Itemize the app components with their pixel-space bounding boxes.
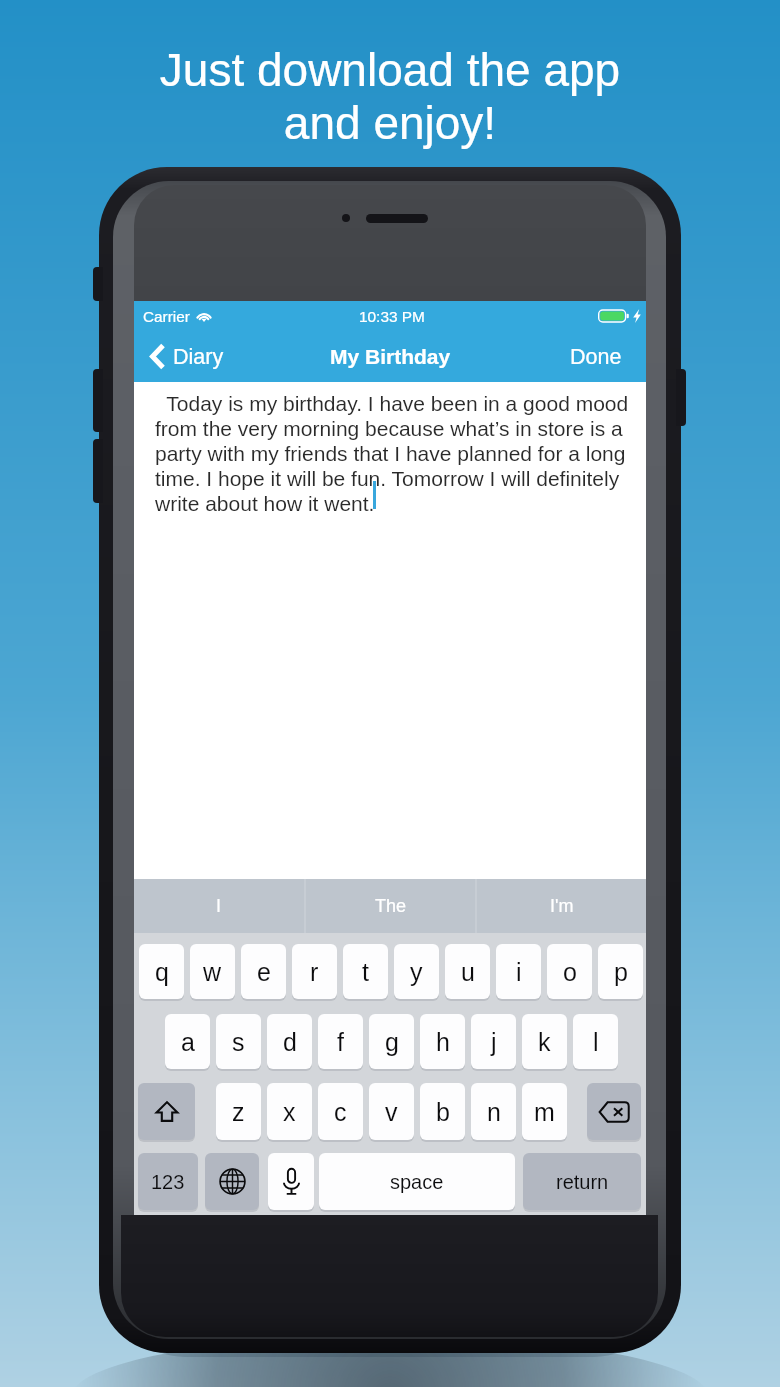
button[interactable]: f <box>318 1014 363 1069</box>
button[interactable]: u <box>445 944 490 999</box>
staticText: q <box>155 958 169 986</box>
staticText: I <box>216 896 222 916</box>
staticText: Carrier <box>143 308 190 325</box>
button[interactable]: Switch keyboard <box>205 1153 259 1210</box>
staticText: j <box>491 1028 497 1056</box>
staticText: My Birthday <box>330 345 451 368</box>
staticText: s <box>232 1028 245 1056</box>
button[interactable]: z <box>216 1083 261 1140</box>
button[interactable]: y <box>394 944 439 999</box>
button[interactable]: 123 <box>138 1153 198 1210</box>
button[interactable]: h <box>420 1014 465 1069</box>
button[interactable]: o <box>547 944 592 999</box>
button[interactable]: x <box>267 1083 312 1140</box>
staticText: 10:33 PM <box>359 308 425 325</box>
staticText: f <box>337 1028 344 1056</box>
staticText: u <box>461 958 475 986</box>
button[interactable]: Diary <box>134 337 234 376</box>
button[interactable]: Dictation <box>268 1153 314 1210</box>
button[interactable]: v <box>369 1083 414 1140</box>
button[interactable]: c <box>318 1083 363 1140</box>
staticText: v <box>385 1098 398 1126</box>
staticText: e <box>257 958 271 986</box>
staticText: l <box>593 1028 599 1056</box>
staticText: x <box>283 1098 296 1126</box>
button[interactable]: r <box>292 944 337 999</box>
staticText: c <box>334 1098 347 1126</box>
staticText: r <box>310 958 319 986</box>
staticText: t <box>362 958 369 986</box>
staticText: d <box>283 1028 297 1056</box>
button[interactable]: space <box>319 1153 515 1210</box>
staticText: space <box>390 1171 444 1193</box>
button[interactable]: Shift <box>138 1083 195 1140</box>
button[interactable]: return <box>523 1153 641 1210</box>
button[interactable]: b <box>420 1083 465 1140</box>
staticText: o <box>563 958 577 986</box>
staticText: b <box>436 1098 450 1126</box>
staticText: m <box>534 1098 555 1126</box>
button[interactable]: a <box>165 1014 210 1069</box>
staticText: h <box>436 1028 450 1056</box>
button[interactable]: s <box>216 1014 261 1069</box>
button[interactable]: Done <box>556 339 646 375</box>
staticText: Today is my birthday. I have been in a g… <box>155 392 639 515</box>
staticText: Diary <box>173 345 224 369</box>
button[interactable]: p <box>598 944 643 999</box>
staticText: 123 <box>151 1171 185 1193</box>
staticText: The <box>375 896 407 916</box>
button[interactable]: i <box>496 944 541 999</box>
staticText: z <box>232 1098 245 1126</box>
button[interactable]: t <box>343 944 388 999</box>
button[interactable]: d <box>267 1014 312 1069</box>
button[interactable]: e <box>241 944 286 999</box>
staticText: p <box>614 958 628 986</box>
staticText: y <box>410 958 423 986</box>
staticText: n <box>487 1098 501 1126</box>
button[interactable]: w <box>190 944 235 999</box>
button[interactable]: m <box>522 1083 567 1140</box>
button[interactable]: j <box>471 1014 516 1069</box>
button[interactable]: k <box>522 1014 567 1069</box>
button[interactable]: g <box>369 1014 414 1069</box>
button[interactable]: I <box>134 879 304 933</box>
staticText: g <box>385 1028 399 1056</box>
staticText: a <box>181 1028 195 1056</box>
staticText: return <box>556 1171 609 1193</box>
staticText: Done <box>570 345 622 369</box>
button[interactable]: Backspace <box>587 1083 641 1140</box>
staticText: k <box>538 1028 551 1056</box>
button[interactable]: n <box>471 1083 516 1140</box>
staticText: Just download the app and enjoy! <box>0 44 780 149</box>
button[interactable]: I'm <box>477 879 646 933</box>
button[interactable]: The <box>306 879 475 933</box>
staticText: i <box>516 958 522 986</box>
button[interactable]: l <box>573 1014 618 1069</box>
staticText: w <box>203 958 222 986</box>
staticText: I'm <box>550 896 574 916</box>
button[interactable]: q <box>139 944 184 999</box>
